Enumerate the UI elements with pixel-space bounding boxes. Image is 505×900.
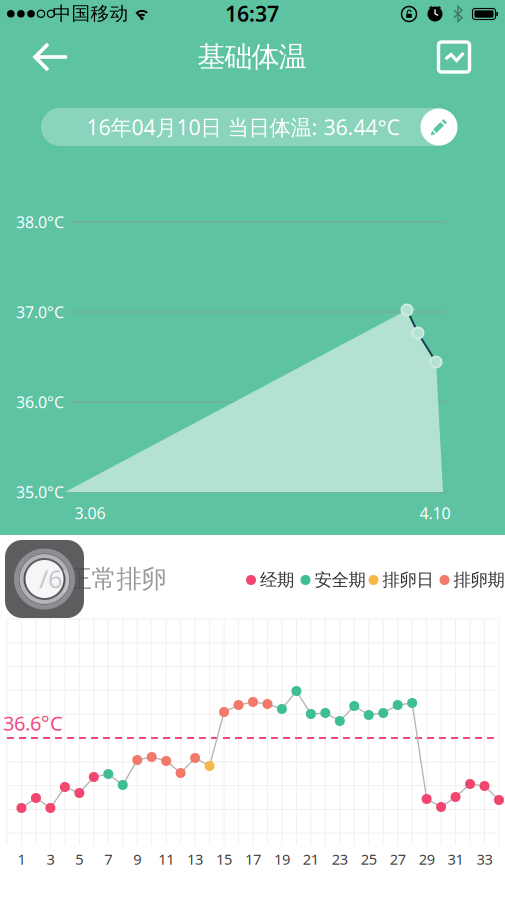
button[interactable]: 16年04月10日 当日体温: 36.44°C	[41, 108, 456, 146]
button[interactable]: Back	[20, 31, 72, 83]
staticText: 25	[361, 849, 377, 869]
staticText: 11	[158, 849, 174, 869]
button[interactable]: Chart	[432, 35, 476, 79]
staticText: 35.0°C	[16, 481, 64, 503]
staticText: 36.0°C	[16, 391, 64, 413]
staticText: 13	[187, 849, 203, 869]
staticText: 16年04月10日 当日体温: 36.44°C	[86, 113, 399, 141]
staticText: 基础体温	[197, 40, 306, 74]
staticText: 17	[245, 849, 261, 869]
staticText: 36.6°C	[3, 710, 63, 736]
staticText: (6/6)正常排卵	[13, 561, 166, 595]
staticText: 15	[216, 849, 232, 869]
staticText: 27	[390, 849, 406, 869]
staticText: 9	[133, 849, 141, 869]
staticText: 23	[332, 849, 348, 869]
staticText: 中国移动	[52, 2, 128, 25]
staticText: 19	[274, 849, 290, 869]
staticText: 16:37	[225, 0, 279, 28]
staticText: 安全期	[314, 569, 365, 591]
staticText: 经期	[260, 569, 294, 591]
staticText: 38.0°C	[16, 211, 64, 233]
staticText: 4.10	[419, 502, 450, 524]
staticText: 7	[104, 849, 112, 869]
staticText: 3.06	[74, 502, 105, 524]
staticText: 排卵期	[453, 569, 504, 591]
staticText: 31	[448, 849, 464, 869]
staticText: 37.0°C	[16, 301, 64, 323]
staticText: 21	[303, 849, 319, 869]
staticText: 1	[17, 849, 25, 869]
staticText: 33	[476, 849, 492, 869]
staticText: /6)	[39, 562, 70, 595]
staticText: 5	[75, 849, 83, 869]
staticText: 排卵日	[382, 569, 433, 591]
button[interactable]: AssistiveTouch	[5, 540, 84, 618]
staticText: 29	[419, 849, 435, 869]
staticText: 3	[46, 849, 54, 869]
